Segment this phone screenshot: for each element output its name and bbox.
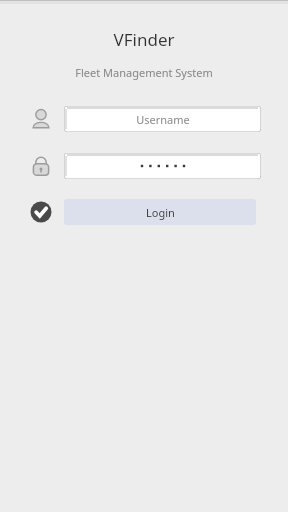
- button[interactable]: [64, 153, 261, 179]
- button[interactable]: Login: [64, 199, 256, 225]
- button[interactable]: Username: [64, 106, 261, 132]
- staticText: Login: [146, 205, 175, 220]
- staticText: VFinder: [0, 28, 288, 51]
- staticText: Username: [136, 112, 190, 127]
- button[interactable]: Password: [30, 155, 52, 177]
- button[interactable]: Confirm: [30, 201, 52, 223]
- staticText: Fleet Management System: [0, 65, 288, 80]
- button[interactable]: User: [30, 108, 52, 130]
